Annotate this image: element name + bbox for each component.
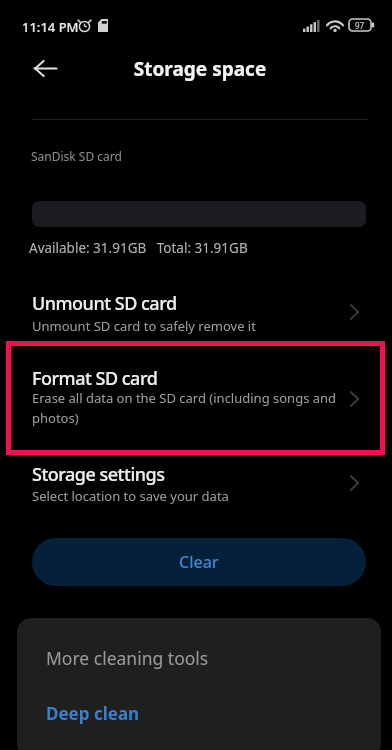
button[interactable]: Storage settings (0, 455, 392, 512)
button[interactable]: Format SD card (6, 341, 385, 455)
staticText: Unmount SD card (32, 291, 177, 316)
staticText: Deep clean (46, 702, 140, 725)
button[interactable]: Unmount SD card (0, 278, 392, 341)
button[interactable]: Clear (32, 538, 366, 586)
staticText: Format SD card (32, 366, 158, 391)
staticText: 11:14 PM (22, 18, 79, 36)
staticText: Available: 31.91GB Total: 31.91GB (29, 239, 248, 257)
staticText: Select location to save your data (32, 487, 229, 505)
staticText: Clear (179, 551, 219, 573)
button[interactable]: Back (25, 48, 65, 88)
staticText: 97 (355, 20, 365, 31)
staticText: Erase all data on the SD card (including… (32, 389, 337, 427)
staticText: SanDisk SD card (31, 148, 122, 164)
staticText: Storage space (4, 56, 392, 82)
button[interactable]: Deep clean (46, 702, 140, 725)
staticText: More cleaning tools (46, 646, 209, 670)
staticText: Storage settings (32, 462, 165, 487)
staticText: Unmount SD card to safely remove it (32, 317, 256, 335)
